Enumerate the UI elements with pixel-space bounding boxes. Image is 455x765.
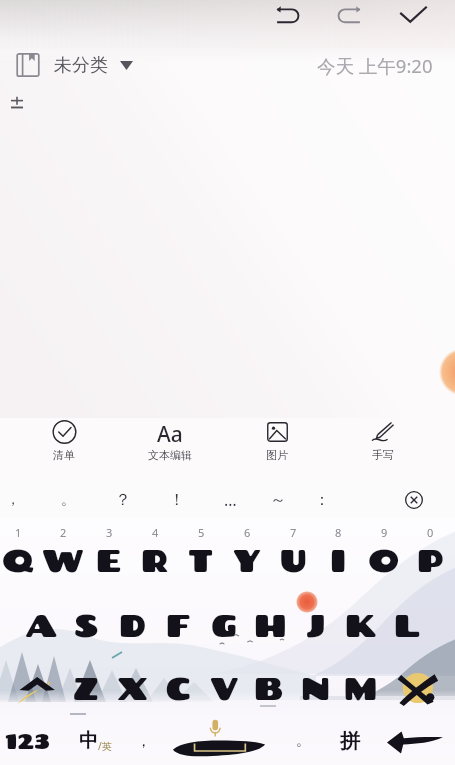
button[interactable]: 清单	[16, 418, 112, 482]
button[interactable]: I	[316, 536, 360, 584]
staticText: 3	[106, 525, 113, 540]
staticText: E	[96, 542, 122, 578]
button[interactable]: Space	[172, 718, 266, 762]
staticText: P	[417, 542, 444, 578]
staticText: 中	[79, 729, 98, 753]
button[interactable]: X	[110, 663, 154, 713]
button[interactable]: M	[339, 663, 383, 713]
button[interactable]: P	[408, 536, 452, 584]
button[interactable]: Done	[393, 0, 433, 30]
staticText: 123	[5, 729, 51, 753]
staticText: L	[394, 607, 420, 643]
staticText: 。	[61, 491, 75, 509]
button[interactable]: 。	[288, 722, 318, 760]
button[interactable]: ？	[101, 482, 145, 518]
button[interactable]: R	[133, 536, 177, 584]
staticText: ～	[270, 490, 286, 510]
button[interactable]: F	[156, 600, 200, 650]
staticText: X	[117, 670, 148, 706]
staticText: 图片	[266, 448, 288, 462]
button[interactable]: E	[87, 536, 131, 584]
staticText: T	[188, 542, 214, 578]
button[interactable]: J	[294, 600, 338, 650]
button[interactable]: 图片	[229, 418, 325, 482]
button[interactable]: ：	[300, 482, 344, 518]
button[interactable]: Clear	[392, 482, 436, 518]
button[interactable]: Z	[64, 663, 108, 713]
staticText: 。	[296, 732, 310, 750]
button[interactable]: K	[339, 600, 383, 650]
button[interactable]: 手写	[335, 418, 431, 482]
button[interactable]: G	[202, 600, 246, 650]
button[interactable]: Redo	[330, 0, 370, 30]
button[interactable]: Enter	[380, 723, 450, 761]
staticText: C	[166, 670, 191, 706]
button[interactable]: O	[362, 536, 406, 584]
staticText: ！	[169, 490, 185, 510]
staticText: 1	[15, 525, 22, 540]
staticText: /英	[98, 739, 112, 753]
button[interactable]: B	[247, 663, 291, 713]
button[interactable]: A	[19, 600, 63, 650]
button[interactable]: 未分类	[10, 49, 133, 81]
button[interactable]: ！	[155, 482, 199, 518]
button[interactable]: C	[156, 663, 200, 713]
staticText: Aa	[157, 420, 183, 444]
button[interactable]: U	[271, 536, 315, 584]
staticText: 4	[152, 525, 159, 540]
button[interactable]: T	[179, 536, 223, 584]
button[interactable]: L	[385, 600, 429, 650]
button[interactable]: Undo	[267, 0, 307, 30]
button[interactable]: ，	[126, 722, 160, 760]
staticText: 清单	[53, 448, 75, 462]
button[interactable]: S	[64, 600, 108, 650]
staticText: D	[119, 607, 146, 643]
staticText: …	[224, 489, 237, 511]
button[interactable]: ，	[0, 482, 35, 518]
button[interactable]: Backspace	[389, 664, 445, 712]
button[interactable]: D	[110, 600, 154, 650]
staticText: R	[141, 542, 169, 578]
staticText: 今天 上午9:20	[317, 53, 433, 78]
button[interactable]: V	[202, 663, 246, 713]
button[interactable]: 拼	[328, 722, 372, 760]
staticText: Y	[233, 542, 262, 578]
staticText: J	[306, 607, 326, 643]
staticText: 未分类	[54, 54, 108, 77]
staticText: H	[254, 607, 287, 643]
button[interactable]: Shift	[10, 664, 66, 712]
staticText: I	[330, 542, 347, 578]
button[interactable]: Y	[225, 536, 269, 584]
staticText: V	[210, 670, 239, 706]
staticText: B	[254, 670, 284, 706]
staticText: 2	[60, 525, 67, 540]
button[interactable]: …	[208, 482, 252, 518]
button[interactable]: W	[41, 536, 85, 584]
staticText: ，	[6, 491, 20, 509]
staticText: ？	[115, 490, 131, 510]
staticText: N	[301, 670, 330, 706]
staticText: 7	[290, 525, 297, 540]
staticText: 拼	[340, 729, 360, 754]
staticText: W	[42, 542, 85, 578]
staticText: U	[280, 542, 307, 578]
staticText: 0	[427, 525, 434, 540]
staticText: F	[166, 607, 191, 643]
staticText: 8	[335, 525, 342, 540]
button[interactable]: H	[248, 600, 292, 650]
staticText: M	[344, 670, 378, 706]
staticText: ：	[314, 490, 330, 510]
staticText: ，	[136, 732, 151, 751]
staticText: 6	[244, 525, 251, 540]
staticText: Q	[2, 542, 35, 578]
button[interactable]: 中	[67, 722, 123, 760]
button[interactable]: Q	[0, 536, 40, 584]
staticText: 9	[381, 525, 388, 540]
button[interactable]: N	[293, 663, 337, 713]
staticText: G	[211, 607, 238, 643]
staticText: A	[25, 607, 58, 643]
button[interactable]: ～	[256, 482, 300, 518]
button[interactable]: 123	[2, 722, 54, 760]
button[interactable]: Aa	[122, 418, 218, 482]
button[interactable]: 。	[46, 482, 90, 518]
